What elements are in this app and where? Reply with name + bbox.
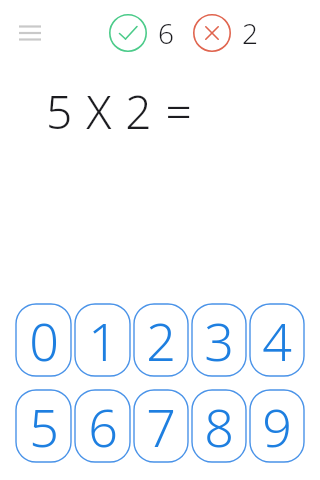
- staticText: 6: [158, 14, 174, 52]
- staticText: 3: [204, 305, 234, 376]
- button[interactable]: 4: [249, 303, 305, 377]
- staticText: 7: [146, 391, 176, 462]
- staticText: 2: [242, 14, 258, 52]
- button[interactable]: 5: [15, 389, 72, 463]
- staticText: 5 X 2 =: [46, 80, 193, 143]
- staticText: 1: [88, 305, 118, 376]
- staticText: 8: [204, 391, 234, 462]
- staticText: 6: [88, 391, 118, 462]
- staticText: 4: [262, 305, 292, 376]
- button[interactable]: 6: [74, 389, 131, 463]
- staticText: 0: [29, 305, 59, 376]
- button[interactable]: 0: [15, 303, 72, 377]
- button[interactable]: 3: [191, 303, 247, 377]
- button[interactable]: 2: [133, 303, 189, 377]
- staticText: 9: [262, 391, 292, 462]
- button[interactable]: 8: [191, 389, 247, 463]
- button[interactable]: 1: [74, 303, 131, 377]
- button[interactable]: 9: [249, 389, 305, 463]
- button[interactable]: Wrong answers: [192, 13, 232, 53]
- button[interactable]: Correct answers: [108, 13, 148, 53]
- staticText: 5: [29, 391, 59, 462]
- button[interactable]: 7: [133, 389, 189, 463]
- button[interactable]: Menu: [10, 13, 50, 53]
- staticText: 2: [146, 305, 176, 376]
